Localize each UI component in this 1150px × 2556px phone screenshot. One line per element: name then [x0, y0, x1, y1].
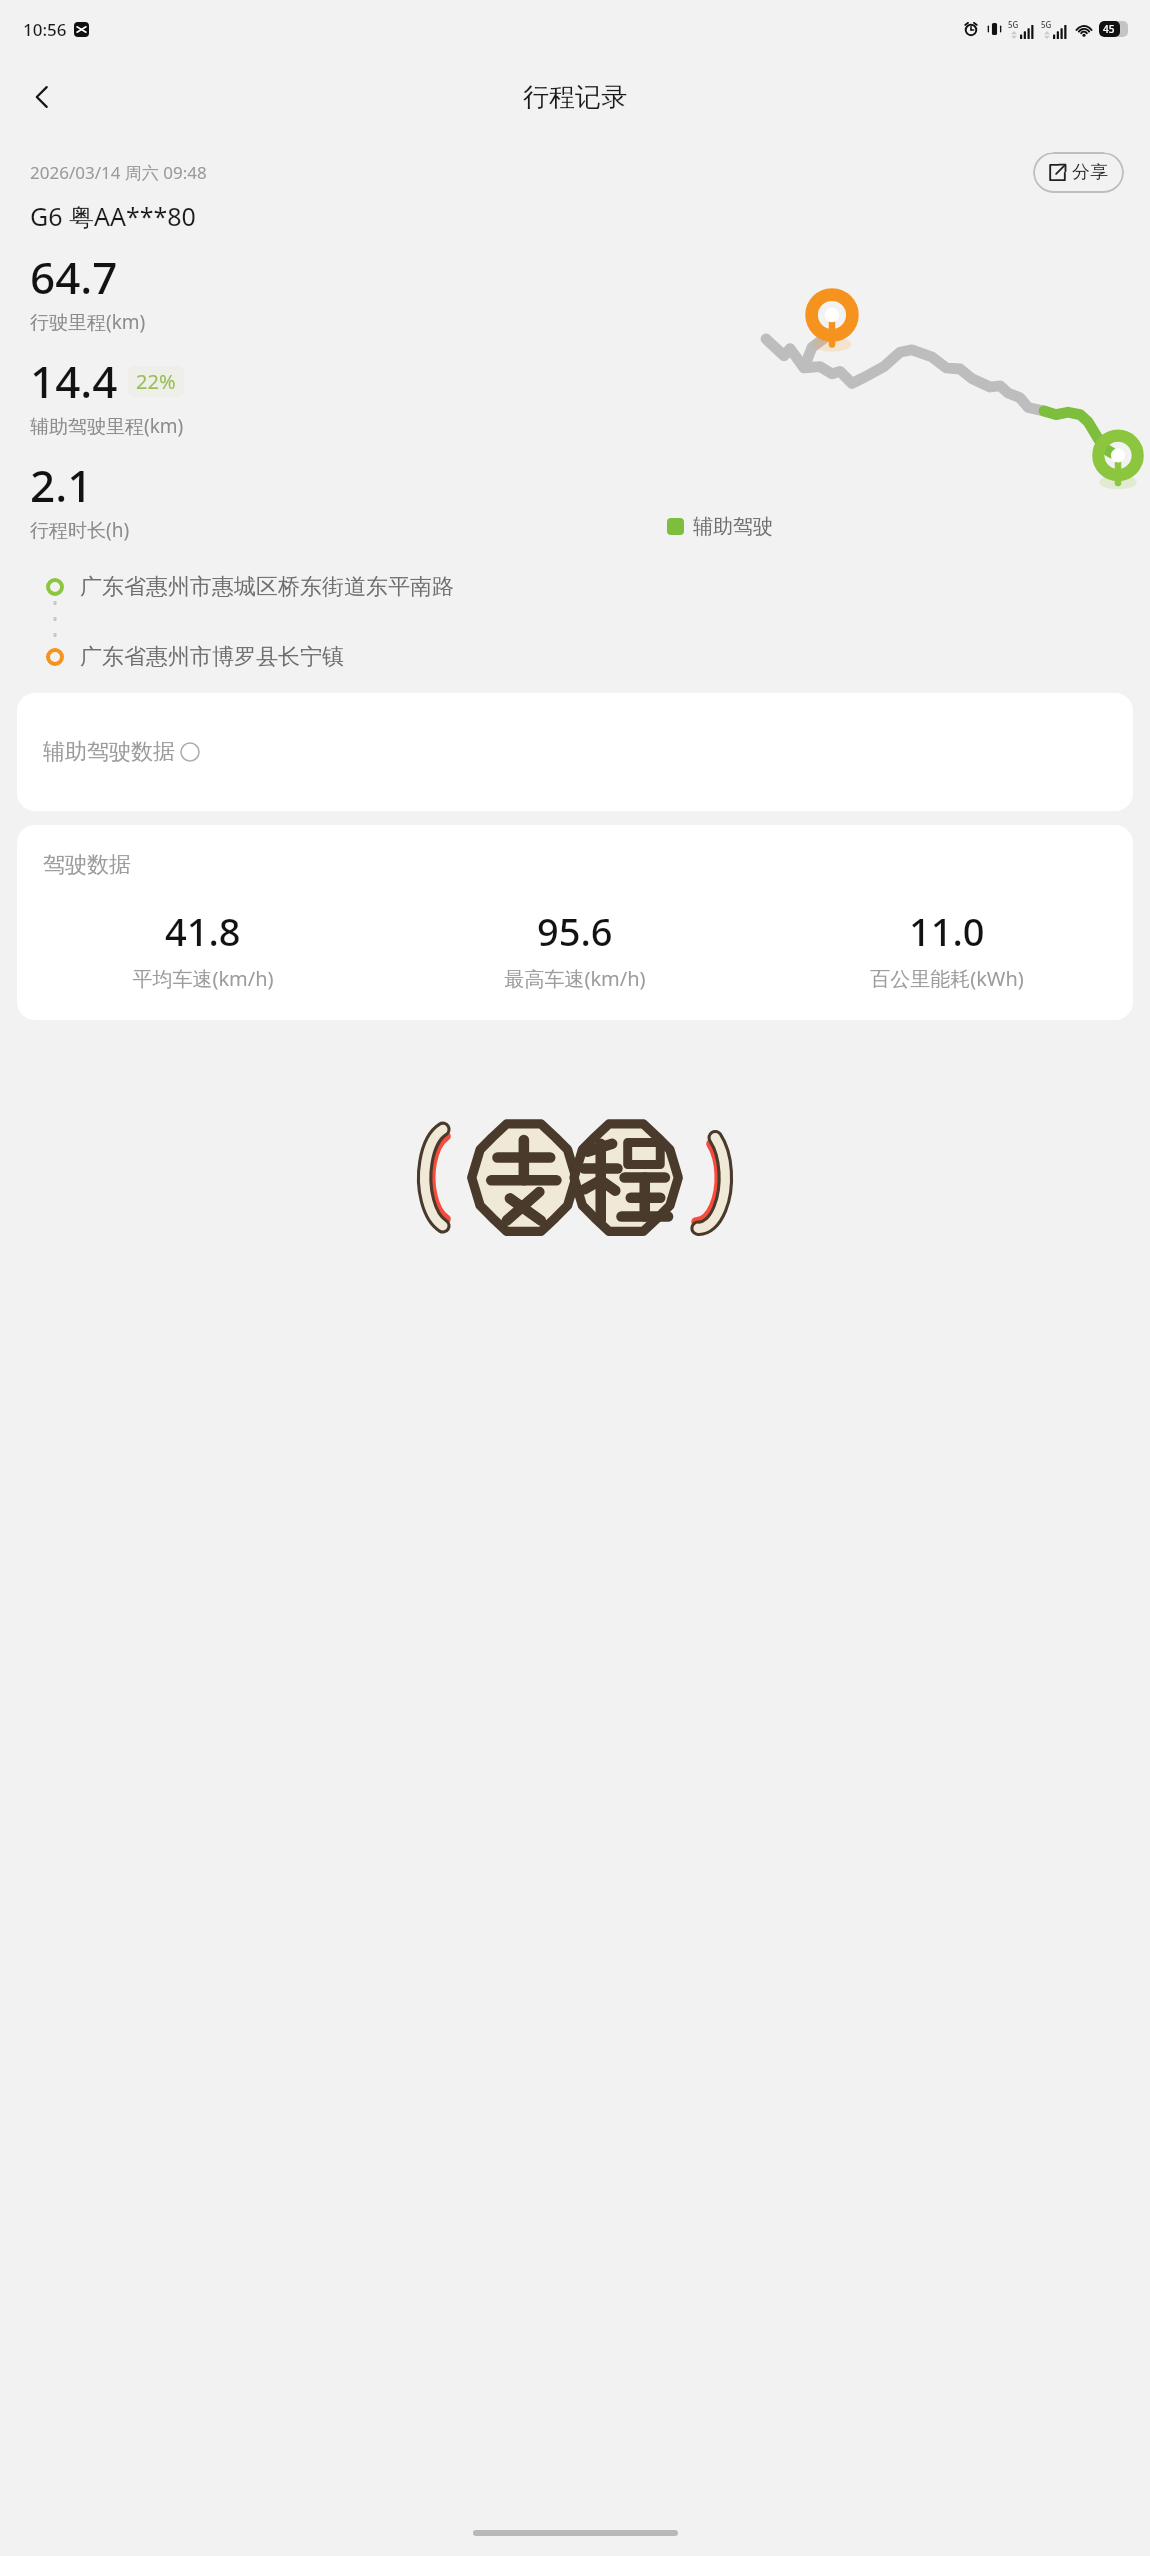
- staticText: 广东省惠州市博罗县长宁镇: [80, 643, 344, 671]
- staticText: 64.7: [30, 247, 118, 307]
- staticText: 行驶里程(km): [30, 309, 146, 335]
- staticText: 14.4: [30, 351, 118, 411]
- staticText: 95.6: [537, 905, 613, 957]
- staticText: 5G: [1041, 19, 1052, 30]
- button[interactable]: Back: [14, 69, 70, 125]
- staticText: 45: [1103, 22, 1115, 36]
- button[interactable]: 辅助驾驶数据: [17, 693, 1133, 811]
- staticText: 广东省惠州市惠城区桥东街道东平南路: [80, 573, 454, 601]
- button[interactable]: 驾驶数据: [17, 825, 1133, 1020]
- staticText: 2026/03/14 周六 09:48: [30, 161, 207, 184]
- staticText: 41.8: [165, 905, 241, 957]
- staticText: 百公里能耗(kWh): [870, 965, 1024, 992]
- staticText: 行程时长(h): [30, 517, 130, 543]
- staticText: 22%: [136, 368, 176, 395]
- staticText: 2.1: [30, 455, 93, 515]
- staticText: 11.0: [909, 905, 985, 957]
- staticText: 10:56: [23, 18, 67, 41]
- button[interactable]: 分享: [1033, 152, 1124, 193]
- staticText: 最高车速(km/h): [504, 965, 646, 992]
- staticText: 行程记录: [523, 81, 627, 114]
- staticText: 辅助驾驶数据: [43, 738, 175, 766]
- staticText: 5G: [1008, 19, 1019, 30]
- staticText: 驾驶数据: [43, 851, 131, 879]
- staticText: 平均车速(km/h): [132, 965, 274, 992]
- staticText: G6 粤AA***80: [30, 199, 196, 233]
- staticText: 辅助驾驶: [693, 514, 773, 539]
- staticText: 辅助驾驶里程(km): [30, 413, 184, 439]
- staticText: 分享: [1072, 161, 1108, 184]
